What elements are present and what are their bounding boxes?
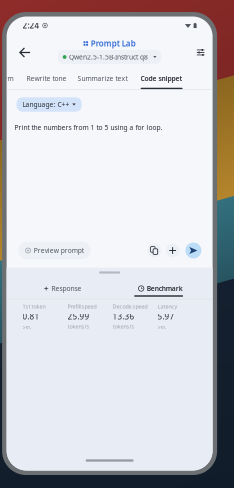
- staticText: sec: [23, 323, 32, 330]
- button[interactable]: Rewrite tone: [21, 68, 73, 88]
- button[interactable]: rm: [0, 68, 20, 88]
- staticText: Response: [51, 284, 81, 293]
- staticText: sec: [158, 323, 167, 330]
- staticText: 0.81: [23, 311, 40, 322]
- staticText: Latency: [158, 303, 178, 310]
- staticText: 5.97: [158, 311, 175, 322]
- staticText: tokens/s: [113, 323, 135, 330]
- button[interactable]: Preview prompt: [18, 242, 91, 259]
- staticText: Language: C++: [22, 100, 69, 109]
- staticText: rm: [5, 74, 14, 83]
- staticText: Preview prompt: [34, 246, 84, 255]
- staticText: Code snippet: [141, 74, 183, 83]
- button[interactable]: Back: [13, 40, 37, 64]
- staticText: Print the numbers from 1 to 5 using a fo…: [15, 123, 163, 132]
- staticText: 13.36: [113, 311, 135, 322]
- button[interactable]: Copy: [147, 243, 161, 257]
- staticText: 25.99: [68, 311, 90, 322]
- button[interactable]: Qwen2.5-1.5B-Instruct q8: [58, 50, 161, 64]
- staticText: 2:24: [23, 20, 40, 31]
- button[interactable]: Add: [166, 243, 180, 257]
- staticText: Benchmark: [147, 284, 183, 293]
- button[interactable]: Code snippet: [135, 68, 189, 88]
- staticText: Prefill speed: [68, 303, 97, 310]
- staticText: 1st token: [23, 303, 46, 310]
- staticText: Qwen2.5-1.5B-Instruct q8: [69, 53, 148, 61]
- button[interactable]: Send: [185, 242, 201, 258]
- button[interactable]: Language: C++: [16, 97, 82, 112]
- staticText: tokens/s: [68, 323, 90, 330]
- staticText: Prompt Lab: [91, 38, 136, 49]
- button[interactable]: Summarize text: [72, 68, 134, 88]
- staticText: Rewrite tone: [27, 74, 67, 83]
- staticText: Decode speed: [113, 303, 148, 310]
- button[interactable]: Settings: [190, 41, 212, 63]
- staticText: Summarize text: [78, 74, 128, 83]
- button[interactable]: Benchmark: [129, 280, 193, 296]
- button[interactable]: Response: [31, 280, 95, 296]
